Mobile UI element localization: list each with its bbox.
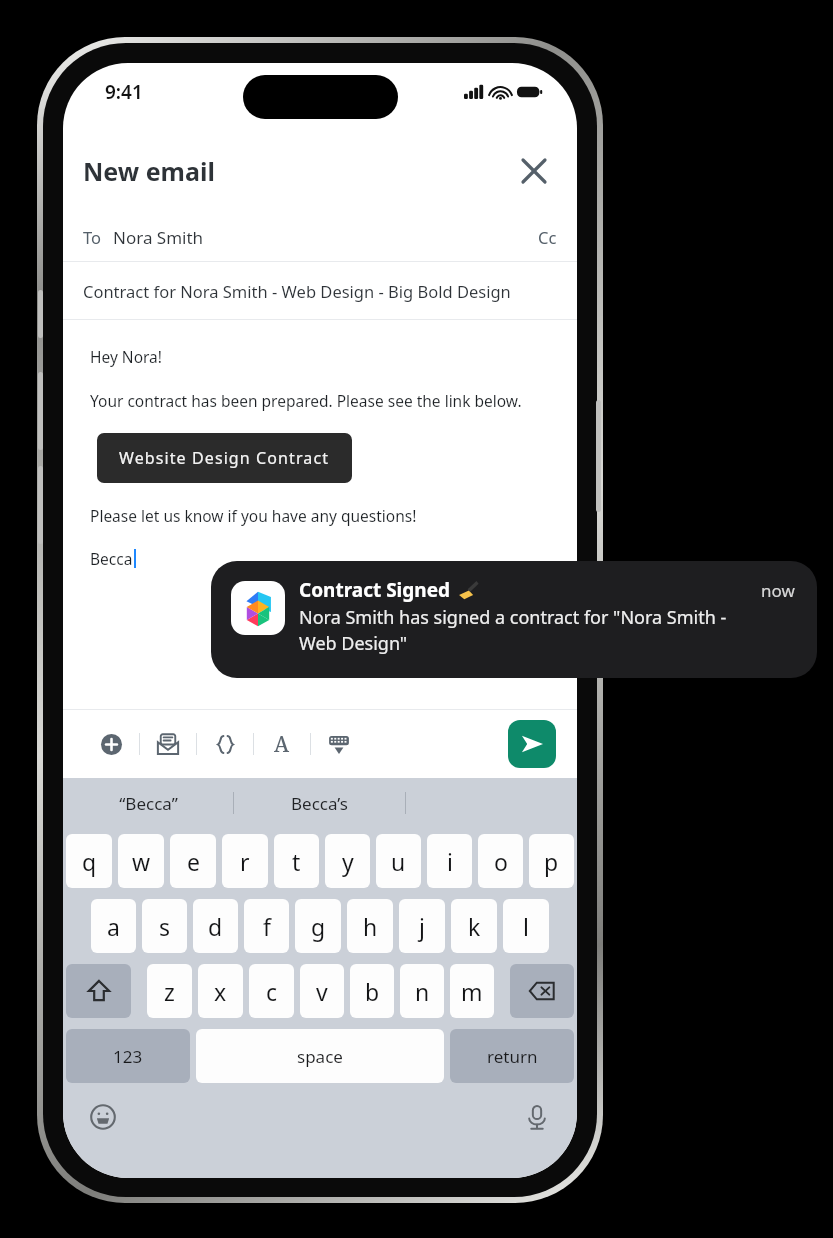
button[interactable]: y [325,834,370,888]
staticText: 9:41 [105,79,143,105]
staticText: m [461,976,483,1007]
staticText: t [292,846,301,877]
button[interactable]: Hide keyboard [319,722,359,766]
staticText: o [494,846,508,877]
staticText: Your contract has been prepared. Please … [90,390,522,411]
staticText: f [263,911,271,942]
staticText: k [468,911,481,942]
button[interactable]: v [300,964,344,1018]
button[interactable]: Backspace [510,964,574,1018]
button[interactable]: u [376,834,421,888]
button[interactable]: d [193,899,238,953]
staticText: a [107,911,120,942]
button[interactable]: z [147,964,192,1018]
staticText: Becca’s [291,792,348,815]
button[interactable]: j [399,899,445,953]
button[interactable]: To [63,213,577,261]
button[interactable]: space [196,1029,444,1083]
staticText: i [447,846,453,877]
staticText: “Becca” [119,792,178,815]
staticText: e [187,846,200,877]
staticText: 123 [113,1045,143,1068]
button[interactable]: Insert template [148,722,188,766]
staticText: l [523,911,529,942]
staticText: s [159,911,171,942]
button[interactable]: Add attachment [91,722,131,766]
button[interactable]: p [529,834,574,888]
button[interactable]: Contract for Nora Smith - Web Design - B… [63,262,577,319]
staticText: x [214,976,227,1007]
staticText: Website Design Contract [119,447,330,469]
staticText: return [487,1045,538,1068]
staticText: Becca [90,548,133,569]
button[interactable]: Website Design Contract [97,433,352,483]
staticText: Nora Smith [113,226,204,249]
button[interactable]: Close [511,148,557,194]
button[interactable]: x [198,964,243,1018]
staticText: d [208,911,223,942]
button[interactable]: Send [508,720,556,768]
button[interactable]: Insert code [205,722,245,766]
button[interactable]: b [350,964,394,1018]
staticText: space [297,1045,343,1068]
button[interactable]: t [274,834,319,888]
button[interactable]: w [118,834,164,888]
button[interactable]: 123 [66,1029,190,1083]
staticText: r [240,846,250,877]
button[interactable]: Contract Signed [211,561,817,678]
staticText: Please let us know if you have any quest… [90,505,417,526]
button[interactable]: l [503,899,549,953]
button[interactable]: Dictation [517,1097,557,1137]
staticText: Contract Signed [299,577,451,603]
staticText: p [544,846,559,877]
staticText: j [419,911,425,942]
staticText: To [83,226,102,248]
staticText: b [365,976,380,1007]
button[interactable]: Text format [262,722,302,766]
button[interactable]: n [400,964,444,1018]
button[interactable]: a [91,899,136,953]
staticText: y [342,846,354,877]
staticText: u [391,846,406,877]
button[interactable]: return [450,1029,574,1083]
button[interactable]: h [347,899,393,953]
button[interactable]: e [170,834,216,888]
button[interactable]: k [451,899,497,953]
staticText: g [311,911,326,942]
staticText: n [415,976,430,1007]
button[interactable]: o [478,834,523,888]
button[interactable]: q [66,834,112,888]
staticText: Hey Nora! [90,346,162,367]
button[interactable]: Shift [66,964,131,1018]
button[interactable]: m [450,964,494,1018]
button[interactable]: s [142,899,187,953]
staticText: Contract for Nora Smith - Web Design - B… [83,280,511,302]
staticText: v [316,976,328,1007]
button[interactable]: r [222,834,268,888]
staticText: now [761,579,795,602]
button[interactable]: c [249,964,294,1018]
button[interactable]: f [244,899,289,953]
button[interactable]: Becca’s [234,778,405,828]
staticText: A [274,730,290,759]
staticText: Nora Smith has signed a contract for "No… [299,605,751,655]
button[interactable]: g [295,899,341,953]
button[interactable]: Emoji [83,1097,123,1137]
staticText: w [132,846,151,877]
staticText: h [363,911,378,942]
staticText: z [164,976,175,1007]
button[interactable]: Cc [538,226,557,248]
button[interactable]: i [427,834,472,888]
staticText: q [82,846,97,877]
staticText: c [266,976,278,1007]
button[interactable]: “Becca” [63,778,233,828]
staticText: New email [83,154,215,188]
